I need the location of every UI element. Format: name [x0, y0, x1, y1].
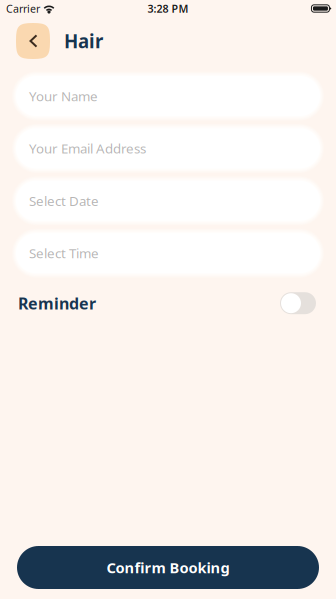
staticText: Carrier — [6, 1, 40, 16]
staticText: Confirm Booking — [106, 558, 229, 577]
button[interactable]: Confirm Booking — [17, 546, 319, 589]
staticText: Your Email Address — [29, 139, 146, 157]
staticText: Hair — [64, 29, 103, 53]
button[interactable]: Reminder toggle — [280, 292, 316, 314]
staticText: Reminder — [18, 293, 96, 314]
staticText: Select Date — [29, 192, 99, 210]
staticText: Select Time — [29, 244, 99, 262]
staticText: 3:28 PM — [147, 1, 188, 16]
staticText: Your Name — [29, 87, 98, 105]
button[interactable]: Back — [16, 23, 50, 59]
